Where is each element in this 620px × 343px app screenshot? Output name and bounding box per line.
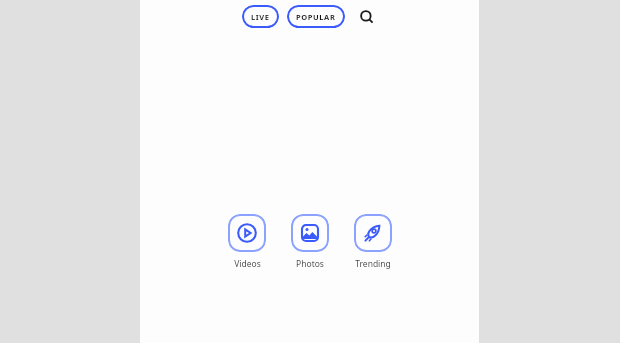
- staticText: LIVE: [251, 12, 270, 22]
- staticText: Photos: [296, 258, 324, 270]
- button[interactable]: Trending: [348, 214, 398, 270]
- staticText: Videos: [234, 258, 261, 270]
- staticText: Trending: [355, 258, 391, 270]
- button[interactable]: Videos: [222, 214, 272, 270]
- button[interactable]: POPULAR: [287, 5, 345, 28]
- button[interactable]: Photos: [285, 214, 335, 270]
- button[interactable]: Search: [356, 6, 378, 28]
- staticText: POPULAR: [296, 12, 336, 22]
- button[interactable]: LIVE: [242, 5, 279, 28]
